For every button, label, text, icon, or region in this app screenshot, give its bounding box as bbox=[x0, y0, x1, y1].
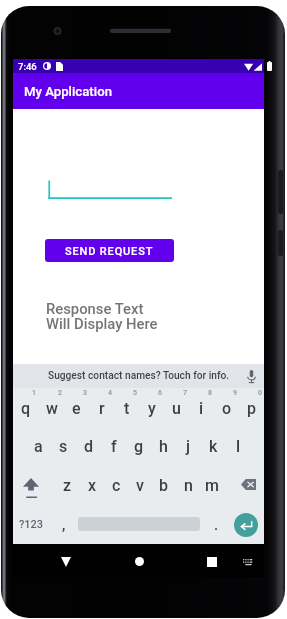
staticText: g bbox=[134, 437, 144, 456]
button[interactable]: Back bbox=[46, 546, 86, 575]
staticText: t bbox=[124, 399, 130, 418]
staticText: s bbox=[59, 437, 68, 456]
button[interactable]: ?123 bbox=[13, 505, 49, 544]
staticText: c bbox=[112, 476, 121, 495]
button[interactable]: 8 bbox=[189, 388, 214, 427]
staticText: 6 bbox=[158, 389, 162, 397]
staticText: x bbox=[88, 476, 97, 495]
button[interactable]: g bbox=[126, 427, 151, 466]
button[interactable]: k bbox=[201, 427, 226, 466]
button[interactable]: Text field bbox=[48, 179, 172, 199]
staticText: 1 bbox=[32, 389, 36, 397]
button[interactable]: c bbox=[104, 466, 128, 505]
button[interactable]: 5 bbox=[114, 388, 139, 427]
button[interactable]: l bbox=[226, 427, 251, 466]
button[interactable]: SEND REQUEST bbox=[45, 239, 174, 262]
button[interactable]: m bbox=[200, 466, 224, 505]
button[interactable]: d bbox=[76, 427, 101, 466]
button[interactable]: 2 bbox=[39, 388, 64, 427]
staticText: d bbox=[84, 437, 94, 456]
button[interactable]: s bbox=[51, 427, 76, 466]
button[interactable]: f bbox=[101, 427, 126, 466]
button[interactable]: 7 bbox=[164, 388, 189, 427]
button[interactable]: , bbox=[49, 505, 78, 544]
staticText: 3 bbox=[83, 389, 87, 397]
staticText: e bbox=[72, 399, 81, 418]
staticText: z bbox=[63, 476, 72, 495]
staticText: 0 bbox=[258, 389, 262, 397]
staticText: w bbox=[46, 399, 58, 418]
button[interactable]: . bbox=[200, 505, 226, 544]
staticText: ?123 bbox=[19, 518, 44, 531]
staticText: m bbox=[205, 476, 219, 495]
staticText: b bbox=[159, 476, 169, 495]
button[interactable]: My Application bbox=[13, 73, 264, 109]
button[interactable]: j bbox=[176, 427, 201, 466]
staticText: 9 bbox=[233, 389, 237, 397]
staticText: . bbox=[214, 516, 219, 534]
staticText: k bbox=[209, 437, 218, 456]
button[interactable]: Recents bbox=[192, 546, 232, 575]
button[interactable]: Switch keyboard bbox=[235, 546, 261, 575]
staticText: Response Text Will Display Here bbox=[46, 300, 158, 332]
staticText: , bbox=[62, 516, 66, 534]
staticText: o bbox=[222, 399, 232, 418]
staticText: Suggest contact names? Touch for info. bbox=[48, 370, 230, 382]
staticText: l bbox=[236, 437, 241, 456]
button[interactable]: Voice input bbox=[239, 364, 264, 388]
staticText: v bbox=[136, 476, 144, 495]
button[interactable]: b bbox=[152, 466, 176, 505]
staticText: u bbox=[172, 399, 181, 418]
staticText: r bbox=[99, 399, 105, 418]
button[interactable]: 0 bbox=[239, 388, 264, 427]
staticText: p bbox=[247, 399, 257, 418]
button[interactable]: 3 bbox=[64, 388, 89, 427]
staticText: 7:46 bbox=[18, 61, 37, 72]
staticText: q bbox=[21, 399, 31, 418]
staticText: y bbox=[148, 399, 156, 418]
staticText: f bbox=[111, 437, 117, 456]
button[interactable]: x bbox=[80, 466, 104, 505]
button[interactable]: 9 bbox=[214, 388, 239, 427]
button[interactable]: z bbox=[55, 466, 80, 505]
button[interactable]: Enter bbox=[234, 513, 258, 537]
button[interactable]: 1 bbox=[13, 388, 39, 427]
staticText: 7 bbox=[183, 389, 187, 397]
button[interactable]: Shift bbox=[13, 466, 55, 505]
staticText: j bbox=[186, 437, 191, 456]
staticText: 5 bbox=[133, 389, 137, 397]
staticText: 4 bbox=[108, 389, 112, 397]
staticText: SEND REQUEST bbox=[65, 245, 154, 258]
staticText: My Application bbox=[24, 84, 112, 99]
staticText: n bbox=[184, 476, 193, 495]
button[interactable]: h bbox=[151, 427, 176, 466]
staticText: i bbox=[199, 399, 204, 418]
staticText: 8 bbox=[208, 389, 212, 397]
button[interactable]: v bbox=[128, 466, 152, 505]
button[interactable]: Home bbox=[119, 546, 159, 575]
button[interactable]: Backspace bbox=[224, 466, 264, 505]
staticText: h bbox=[159, 437, 168, 456]
button[interactable]: 4 bbox=[89, 388, 114, 427]
button[interactable]: n bbox=[176, 466, 200, 505]
staticText: a bbox=[34, 437, 43, 456]
staticText: 2 bbox=[58, 389, 62, 397]
button[interactable]: 6 bbox=[139, 388, 164, 427]
button[interactable]: a bbox=[26, 427, 51, 466]
